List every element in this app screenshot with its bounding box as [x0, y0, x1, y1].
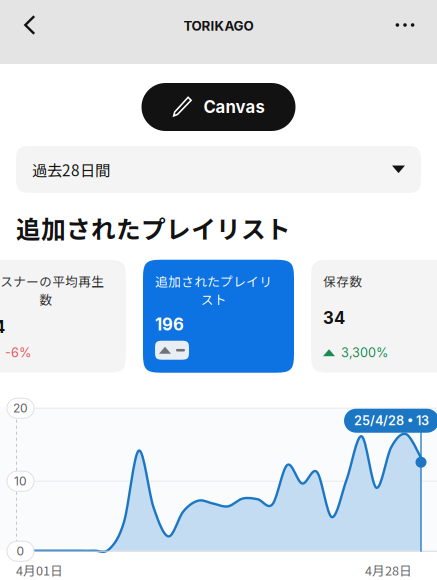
staticText: 10 [14, 474, 27, 488]
staticText: 過去28日間 [32, 158, 110, 181]
staticText: 34 [323, 308, 345, 328]
staticText: 追加されたプレイリスト [155, 272, 272, 308]
staticText: 0 [16, 544, 24, 558]
staticText: 4月28日 [365, 561, 412, 579]
button[interactable]: リスナーの平均再生数 [0, 260, 126, 373]
staticText: -6% [5, 345, 31, 360]
staticText: 196 [155, 314, 184, 335]
staticText: 4月01日 [16, 561, 63, 579]
staticText: リスナーの平均再生数 [0, 272, 104, 308]
staticText: 20 [13, 401, 28, 415]
staticText: 14 [0, 317, 5, 337]
staticText: 3,300% [341, 345, 388, 360]
staticText: 追加されたプレイリスト [16, 210, 291, 246]
button[interactable]: Back [6, 0, 54, 50]
button[interactable]: More options [381, 0, 429, 50]
button[interactable]: 保存数 [311, 260, 437, 373]
staticText: Canvas [203, 97, 264, 117]
button[interactable]: Canvas [141, 83, 295, 131]
staticText: 保存数 [323, 272, 362, 290]
staticText: TORIKAGO [183, 18, 253, 34]
button[interactable]: 追加されたプレイリスト [143, 260, 294, 373]
staticText: 25/4/28 • 13 [354, 413, 429, 428]
button[interactable]: 過去28日間 [16, 146, 421, 193]
